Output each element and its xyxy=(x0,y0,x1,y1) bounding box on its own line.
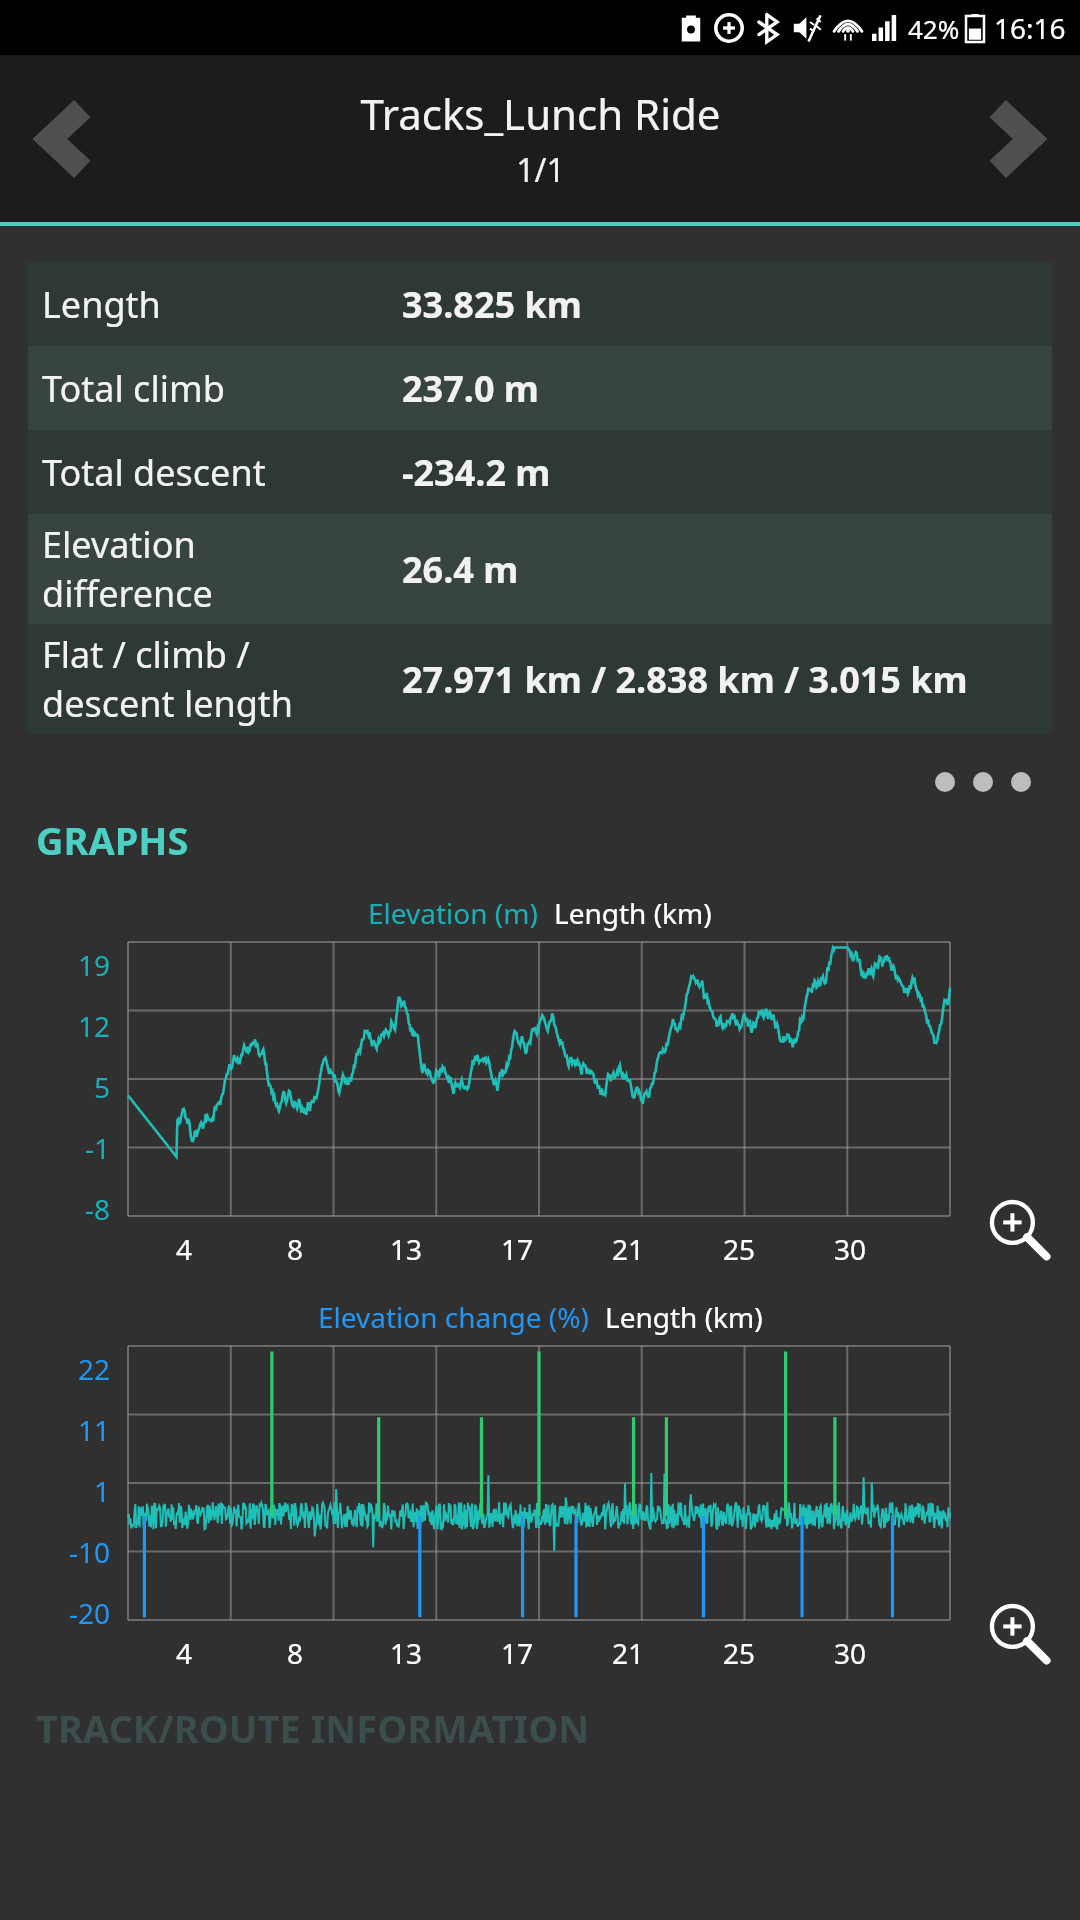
staticText: 5 xyxy=(93,1068,110,1106)
staticText: 11 xyxy=(77,1411,110,1449)
button[interactable]: Zoom chart xyxy=(980,1594,1056,1670)
staticText: 8 xyxy=(287,1230,304,1268)
staticText: 27.971 km / 2.838 km / 3.015 km xyxy=(402,655,968,704)
staticText: 13 xyxy=(390,1634,423,1672)
staticText: 21 xyxy=(612,1634,645,1672)
staticText: TRACK/ROUTE INFORMATION xyxy=(36,1702,590,1754)
staticText: 8 xyxy=(287,1634,304,1672)
staticText: 25 xyxy=(723,1634,756,1672)
staticText: 19 xyxy=(77,946,110,984)
staticText: 17 xyxy=(501,1634,534,1672)
staticText: 13 xyxy=(390,1230,423,1268)
staticText: Flat / climb / descent length xyxy=(42,630,294,728)
staticText: Tracks_Lunch Ride xyxy=(360,85,721,142)
staticText: 12 xyxy=(77,1007,110,1045)
staticText: 4 xyxy=(176,1634,193,1672)
staticText: GRAPHS xyxy=(36,814,189,866)
staticText: -20 xyxy=(68,1594,110,1632)
staticText: -8 xyxy=(84,1190,110,1228)
staticText: 1/1 xyxy=(516,148,565,192)
staticText: Length xyxy=(42,280,161,329)
button[interactable]: Length xyxy=(28,262,1052,346)
button[interactable]: Elevation difference xyxy=(28,514,1052,624)
staticText: 21 xyxy=(612,1230,645,1268)
staticText: 26.4 m xyxy=(402,545,519,594)
staticText: 30 xyxy=(834,1634,867,1672)
staticText: 16:16 xyxy=(994,9,1066,47)
staticText: 4 xyxy=(176,1230,193,1268)
staticText: 25 xyxy=(723,1230,756,1268)
staticText: Total descent xyxy=(42,448,266,497)
staticText: 33.825 km xyxy=(402,280,582,329)
staticText: -10 xyxy=(68,1533,110,1571)
staticText: 1 xyxy=(93,1472,110,1510)
staticText: Length (km) xyxy=(554,894,712,932)
staticText: Total climb xyxy=(42,364,225,413)
button[interactable]: Previous xyxy=(0,55,130,222)
staticText: 237.0 m xyxy=(402,364,539,413)
staticText: -234.2 m xyxy=(402,448,551,497)
staticText: Elevation (m) xyxy=(368,894,538,932)
button[interactable]: Zoom chart xyxy=(980,1190,1056,1266)
staticText: 30 xyxy=(834,1230,867,1268)
staticText: Elevation difference xyxy=(42,520,213,618)
button[interactable]: Total climb xyxy=(28,346,1052,430)
staticText: -1 xyxy=(84,1129,110,1167)
staticText: Length (km) xyxy=(605,1298,763,1336)
button[interactable]: Total descent xyxy=(28,430,1052,514)
staticText: Elevation change (%) xyxy=(318,1298,589,1336)
staticText: 42% xyxy=(908,11,960,46)
staticText: 17 xyxy=(501,1230,534,1268)
button[interactable]: Flat / climb / descent length xyxy=(28,624,1052,734)
button[interactable]: Next xyxy=(950,55,1080,222)
staticText: 22 xyxy=(77,1350,110,1388)
